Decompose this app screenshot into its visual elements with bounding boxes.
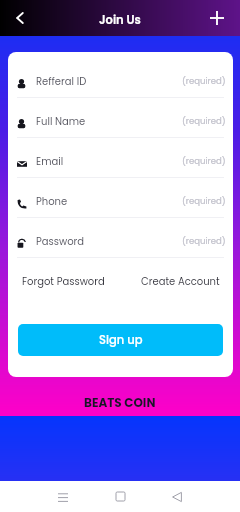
button[interactable]: Back [160,481,240,512]
button[interactable]: Refferal ID [8,64,233,104]
staticText: (required) [182,115,226,127]
button[interactable]: Full Name [8,104,233,144]
button[interactable]: Sign up [18,324,223,356]
staticText: Join Us [99,12,141,28]
button[interactable]: Add [206,7,228,29]
button[interactable]: Back [9,7,31,29]
staticText: Password [36,234,85,248]
staticText: Phone [36,194,68,208]
button[interactable]: Create Account [120,264,233,298]
staticText: Full Name [36,114,86,128]
button[interactable]: Password [8,224,233,264]
staticText: (required) [182,75,226,87]
button[interactable]: Recent apps [0,481,80,512]
staticText: Refferal ID [36,74,87,88]
staticText: (required) [182,155,226,167]
staticText: Forgot Password [22,274,105,288]
button[interactable]: Phone [8,184,233,224]
staticText: Create Account [141,274,220,288]
staticText: (required) [182,195,226,207]
staticText: BEATS COIN [84,394,156,411]
staticText: Email [36,154,64,168]
button[interactable]: Forgot Password [8,264,120,298]
button[interactable]: Home [80,481,160,512]
staticText: Sign up [99,332,143,348]
button[interactable]: Email [8,144,233,184]
staticText: (required) [182,235,226,247]
